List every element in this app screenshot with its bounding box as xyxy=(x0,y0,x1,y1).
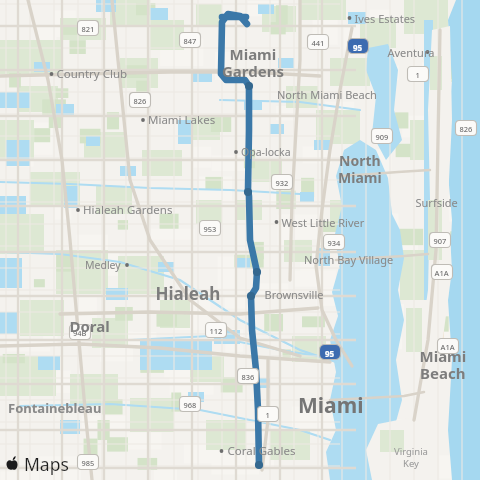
button[interactable]: Map of Miami with transit route xyxy=(0,0,480,480)
